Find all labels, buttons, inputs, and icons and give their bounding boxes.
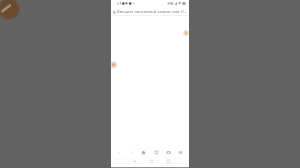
staticText: Введите поисковый запрос или U... [117, 9, 187, 15]
button[interactable]: Search or type URL [111, 8, 189, 16]
button[interactable]: Forward [127, 148, 136, 157]
button[interactable]: Menu [176, 148, 185, 157]
button[interactable]: Tabs [164, 148, 173, 157]
button[interactable]: Muted [0, 0, 20, 20]
button[interactable]: Recents [164, 157, 172, 165]
button[interactable]: Home [139, 148, 148, 157]
button[interactable]: Bookmarks [152, 148, 161, 157]
button[interactable]: Back [130, 157, 138, 165]
button[interactable]: Home [147, 157, 155, 165]
button[interactable]: Back [115, 148, 124, 157]
